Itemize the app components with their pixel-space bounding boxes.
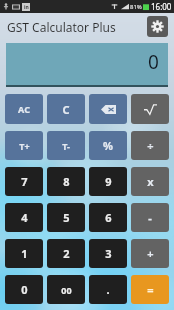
- button[interactable]: T+: [5, 131, 43, 160]
- staticText: -: [148, 210, 152, 225]
- button[interactable]: +: [131, 239, 169, 268]
- button[interactable]: 9: [89, 167, 127, 196]
- staticText: 4: [21, 210, 28, 225]
- button[interactable]: 0: [5, 275, 43, 304]
- button[interactable]: Square root: [131, 94, 169, 124]
- staticText: 16:00: [151, 1, 172, 12]
- staticText: 5: [63, 210, 70, 225]
- staticText: T-: [62, 140, 70, 152]
- staticText: .: [106, 282, 110, 297]
- button[interactable]: 2: [47, 239, 85, 268]
- staticText: x: [147, 174, 154, 189]
- staticText: 0: [21, 282, 28, 297]
- staticText: %: [103, 138, 113, 153]
- staticText: 8: [63, 174, 70, 189]
- staticText: in: [24, 4, 29, 11]
- staticText: 00: [61, 284, 72, 296]
- button[interactable]: 4: [5, 203, 43, 232]
- button[interactable]: 6: [89, 203, 127, 232]
- button[interactable]: Backspace: [89, 94, 127, 124]
- button[interactable]: 00: [47, 275, 85, 304]
- button[interactable]: C: [47, 94, 85, 124]
- button[interactable]: AC: [5, 94, 43, 124]
- button[interactable]: Settings: [147, 16, 168, 37]
- button[interactable]: 8: [47, 167, 85, 196]
- staticText: GST Calculator Plus: [7, 19, 116, 35]
- staticText: 9: [105, 174, 112, 189]
- button[interactable]: =: [131, 275, 169, 304]
- button[interactable]: %: [89, 131, 127, 160]
- button[interactable]: 5: [47, 203, 85, 232]
- button[interactable]: T-: [47, 131, 85, 160]
- staticText: 81%: [130, 3, 142, 11]
- button[interactable]: 1: [5, 239, 43, 268]
- button[interactable]: .: [89, 275, 127, 304]
- staticText: ÷: [147, 138, 154, 153]
- staticText: 6: [105, 210, 112, 225]
- staticText: 3: [105, 246, 112, 261]
- button[interactable]: 3: [89, 239, 127, 268]
- button[interactable]: 7: [5, 167, 43, 196]
- staticText: 2: [63, 246, 70, 261]
- staticText: +: [147, 246, 154, 261]
- button[interactable]: ÷: [131, 131, 169, 160]
- staticText: AC: [18, 103, 30, 115]
- staticText: T+: [19, 140, 30, 152]
- button[interactable]: x: [131, 167, 169, 196]
- staticText: 1: [21, 246, 28, 261]
- staticText: =: [147, 282, 154, 297]
- staticText: 7: [21, 174, 28, 189]
- button[interactable]: -: [131, 203, 169, 232]
- staticText: C: [62, 102, 70, 117]
- staticText: 0: [148, 49, 159, 75]
